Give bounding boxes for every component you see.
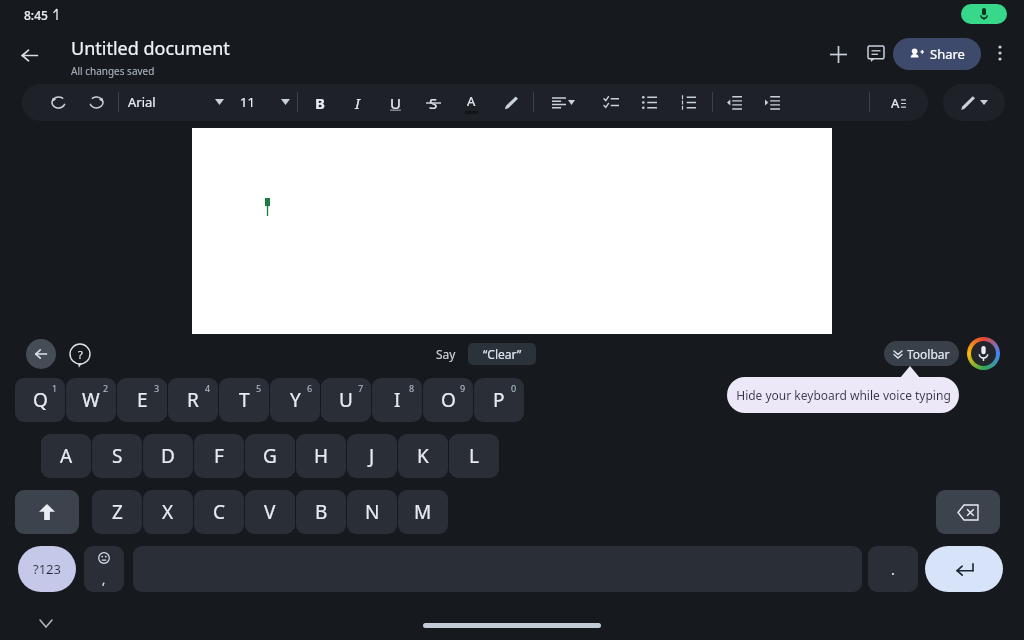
staticText: Q (33, 387, 48, 413)
button[interactable]: B (305, 88, 334, 117)
button[interactable]: F (194, 434, 244, 478)
button[interactable]: Voice typing (967, 337, 1000, 370)
staticText: U (339, 387, 353, 413)
staticText: 6 (307, 382, 313, 394)
staticText: C (213, 499, 226, 525)
button[interactable]: Period (868, 546, 918, 592)
button[interactable]: Increase indent (758, 88, 787, 117)
button[interactable]: Voice recording active (961, 4, 1007, 24)
staticText: J (369, 443, 375, 469)
button[interactable]: W (66, 378, 116, 422)
button[interactable]: Align (544, 88, 582, 117)
button[interactable]: U (381, 88, 410, 117)
button[interactable]: Help (65, 339, 95, 369)
staticText: G (263, 443, 277, 469)
button[interactable]: U (321, 378, 371, 422)
staticText: 0 (511, 382, 517, 394)
staticText: Share (930, 45, 965, 63)
staticText: B (315, 499, 328, 525)
staticText: W (82, 387, 100, 413)
button[interactable]: Hide keyboard (33, 610, 59, 636)
button[interactable]: S (92, 434, 142, 478)
button[interactable]: Q (15, 378, 65, 422)
staticText: Y (290, 387, 301, 413)
button[interactable]: Share (893, 38, 981, 70)
button[interactable]: Enter (925, 546, 1003, 592)
button[interactable]: I (372, 378, 422, 422)
button[interactable]: Say (436, 346, 456, 362)
button[interactable]: J (347, 434, 397, 478)
button[interactable]: V (245, 490, 295, 534)
staticText: A (891, 94, 900, 112)
button[interactable]: H (296, 434, 346, 478)
button[interactable]: Add (822, 38, 854, 70)
staticText: P (493, 387, 505, 413)
button[interactable]: P (474, 378, 524, 422)
staticText: L (469, 443, 479, 469)
button[interactable]: Untitled document (71, 36, 230, 78)
staticText: K (417, 443, 429, 469)
button[interactable]: 11 (240, 88, 290, 116)
button[interactable]: Highlight (496, 88, 525, 117)
staticText: ?123 (33, 560, 61, 578)
button[interactable]: Back (14, 40, 44, 70)
button[interactable]: E (117, 378, 167, 422)
button[interactable]: Checklist (597, 88, 626, 117)
staticText: O (441, 387, 456, 413)
button[interactable]: T (219, 378, 269, 422)
button[interactable]: C (194, 490, 244, 534)
staticText: 3 (154, 382, 160, 394)
button[interactable]: “Clear” (468, 343, 536, 365)
button[interactable]: Decrease indent (720, 88, 749, 117)
button[interactable]: R (168, 378, 218, 422)
button[interactable]: ?123 (18, 546, 76, 592)
button[interactable]: X (143, 490, 193, 534)
staticText: D (161, 443, 175, 469)
button[interactable]: D (143, 434, 193, 478)
staticText: M (414, 499, 432, 525)
staticText: All changes saved (71, 64, 155, 78)
staticText: H (314, 443, 329, 469)
button[interactable]: Backspace (936, 490, 1000, 534)
button[interactable]: Numbered list (674, 88, 703, 117)
staticText: 11 (240, 93, 255, 111)
button[interactable]: Comments (860, 38, 892, 70)
staticText: Arial (128, 93, 156, 111)
button[interactable]: Z (92, 490, 142, 534)
button[interactable]: More options (985, 38, 1015, 68)
button[interactable]: Hide your keyboard while voice typing (727, 377, 959, 413)
staticText: 8:45 (24, 7, 48, 23)
staticText: E (137, 387, 148, 413)
button[interactable]: B (296, 490, 346, 534)
staticText: A (467, 92, 476, 110)
button[interactable]: Edit mode (943, 84, 1005, 121)
button[interactable]: Shift (15, 490, 79, 534)
button[interactable]: Text style (884, 88, 913, 117)
staticText: S (429, 93, 438, 113)
button[interactable]: Text color (457, 88, 486, 117)
staticText: V (264, 499, 276, 525)
staticText: ? (78, 347, 83, 362)
button[interactable]: Back (26, 339, 56, 369)
button[interactable]: K (398, 434, 448, 478)
button[interactable]: M (398, 490, 448, 534)
staticText: Z (112, 499, 123, 525)
staticText: X (162, 499, 174, 525)
button[interactable]: Strikethrough (419, 88, 448, 117)
button[interactable]: Redo (82, 88, 110, 116)
button[interactable]: Toolbar (884, 341, 959, 366)
button[interactable]: Bulleted list (635, 88, 664, 117)
staticText: 8 (409, 382, 415, 394)
button[interactable]: O (423, 378, 473, 422)
button[interactable]: Emoji (84, 546, 124, 592)
button[interactable]: L (449, 434, 499, 478)
staticText: Toolbar (907, 346, 950, 362)
button[interactable]: Y (270, 378, 320, 422)
button[interactable]: Arial (128, 88, 224, 116)
button[interactable]: N (347, 490, 397, 534)
button[interactable]: Undo (44, 88, 72, 116)
button[interactable]: G (245, 434, 295, 478)
button[interactable]: I (343, 88, 372, 117)
button[interactable]: A (41, 434, 91, 478)
